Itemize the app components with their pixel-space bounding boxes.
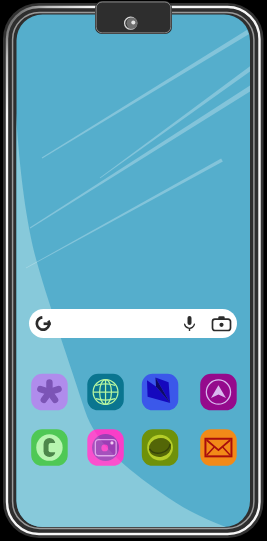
button[interactable]: Phone <box>31 429 68 466</box>
button[interactable]: Apps <box>31 374 68 411</box>
button[interactable]: Navigation <box>200 374 237 411</box>
button[interactable]: Files <box>142 374 179 411</box>
button[interactable]: Photos <box>87 429 124 466</box>
button[interactable]: Search <box>29 309 237 338</box>
button[interactable]: Mail <box>200 429 237 466</box>
button[interactable]: Music <box>142 429 179 466</box>
button[interactable]: Browser <box>87 374 124 411</box>
